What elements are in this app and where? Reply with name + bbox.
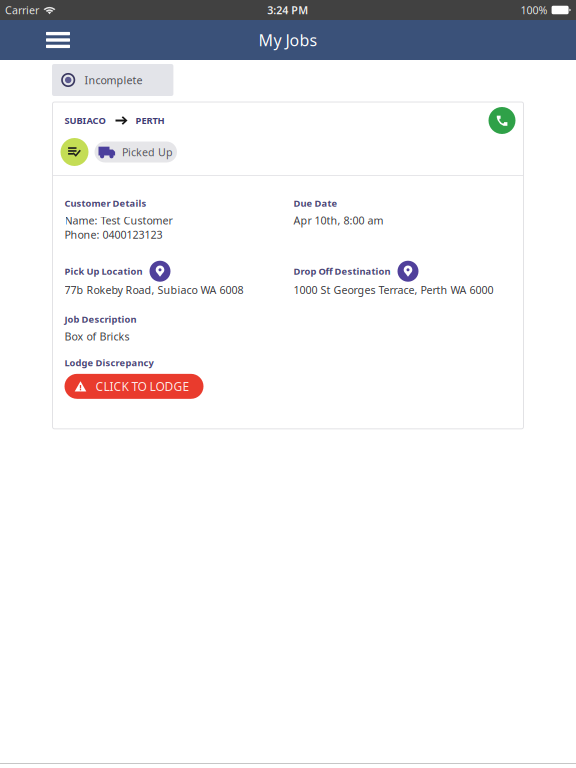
staticText: Name: Test Customer <box>64 213 172 228</box>
staticText: Picked Up <box>122 145 173 159</box>
staticText: PERTH <box>135 114 164 127</box>
staticText: Drop Off Destination <box>293 265 390 277</box>
staticText: Due Date <box>293 197 337 209</box>
staticText: 77b Rokeby Road, Subiaco WA 6008 <box>64 283 243 297</box>
button[interactable]: Call customer <box>488 107 515 134</box>
staticText: Incomplete <box>84 73 142 87</box>
staticText: CLICK TO LODGE <box>95 378 189 394</box>
staticText: Phone: 0400123123 <box>64 228 162 242</box>
staticText: Job Description <box>64 313 136 325</box>
staticText: 3:24 PM <box>267 3 308 17</box>
button[interactable]: Menu <box>34 21 82 59</box>
staticText: Lodge Discrepancy <box>64 356 153 369</box>
button[interactable]: CLICK TO LODGE <box>64 374 203 399</box>
staticText: Carrier <box>5 3 39 17</box>
button[interactable]: Incomplete <box>52 64 173 96</box>
staticText: Customer Details <box>64 197 146 209</box>
staticText: Apr 10th, 8:00 am <box>293 213 383 228</box>
staticText: My Jobs <box>258 29 317 51</box>
staticText: 1000 St Georges Terrace, Perth WA 6000 <box>293 283 493 297</box>
staticText: 100% <box>521 3 548 17</box>
staticText: Pick Up Location <box>64 265 142 277</box>
staticText: SUBIACO <box>64 114 105 127</box>
staticText: Box of Bricks <box>64 329 129 343</box>
